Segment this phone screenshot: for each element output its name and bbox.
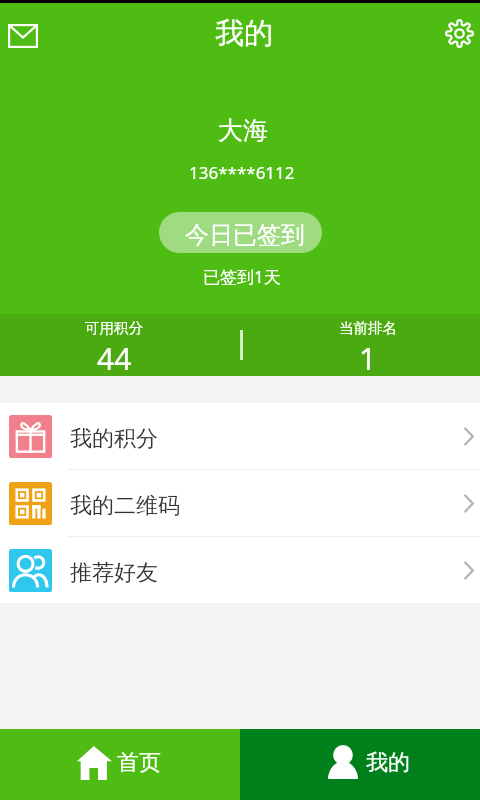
staticText: 推荐好友 [70, 559, 158, 587]
staticText: 我的 [215, 15, 273, 52]
staticText: 可用积分 [85, 319, 143, 337]
staticText: 首页 [117, 749, 161, 777]
button[interactable]: 推荐好友 [0, 537, 480, 603]
staticText: 已签到1天 [203, 265, 281, 288]
button[interactable]: Settings [435, 9, 480, 57]
staticText: 1 [359, 338, 377, 376]
staticText: 我的 [366, 749, 410, 777]
staticText: 44 [97, 338, 132, 376]
staticText: 大海 [218, 115, 268, 146]
staticText: 我的二维码 [70, 492, 180, 520]
button[interactable]: Messages [0, 12, 47, 60]
button[interactable]: 今日已签到 [159, 212, 322, 253]
button[interactable]: 我的二维码 [0, 470, 480, 536]
staticText: 当前排名 [339, 319, 397, 337]
staticText: 今日已签到 [185, 220, 305, 250]
button[interactable]: 首页 [0, 729, 240, 800]
button[interactable]: 我的积分 [0, 403, 480, 469]
staticText: 我的积分 [70, 425, 158, 453]
staticText: 136****6112 [189, 161, 295, 184]
button[interactable]: 可用积分 [0, 314, 233, 376]
button[interactable]: 我的 [240, 729, 480, 800]
button[interactable]: 当前排名 [248, 314, 480, 376]
